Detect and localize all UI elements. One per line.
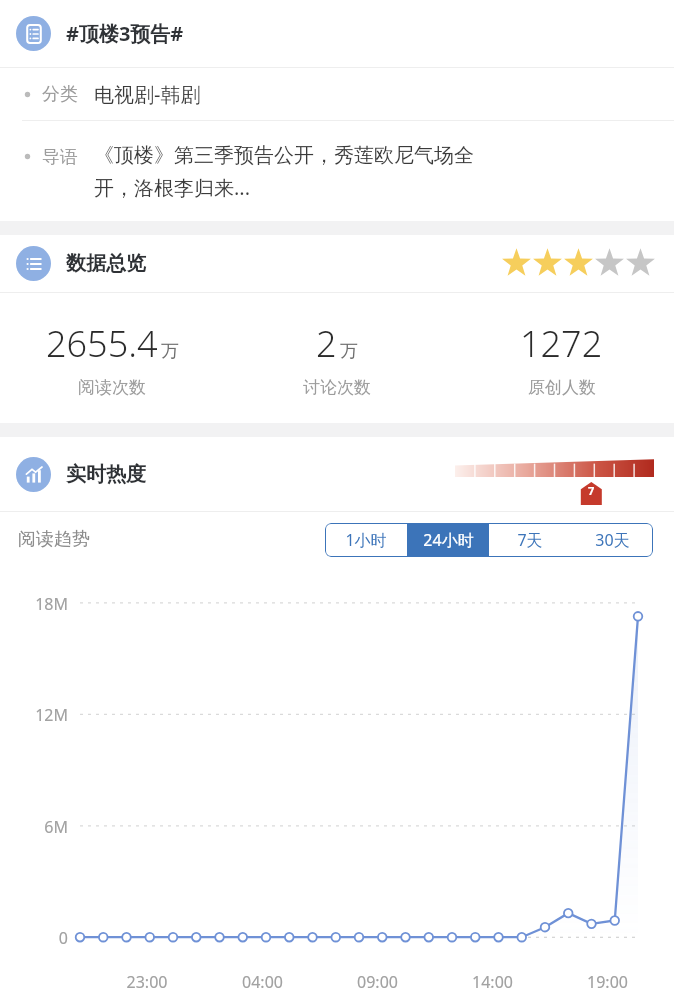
button[interactable]: 24小时 (407, 523, 489, 557)
button[interactable]: #顶楼3预告# (0, 0, 674, 67)
staticText: 09:00 (320, 971, 435, 993)
staticText: 24小时 (423, 529, 474, 551)
staticText: 2655.4 (46, 319, 158, 368)
staticText: 2 (316, 319, 337, 368)
staticText: 《顶楼》第三季预告公开，秀莲欧尼气场全 开，洛根李归来... (94, 143, 474, 201)
staticText: #顶楼3预告# (66, 20, 184, 47)
staticText: 1272 (520, 319, 603, 368)
button[interactable]: 1小时 (325, 523, 407, 557)
button[interactable]: 数据总览 (0, 235, 674, 292)
staticText: 7 (588, 483, 595, 498)
staticText: 30天 (595, 529, 630, 551)
staticText: 分类 (42, 83, 78, 106)
staticText: 万 (340, 340, 358, 363)
staticText: 12M (0, 704, 68, 726)
button[interactable]: 7天 (489, 523, 571, 557)
button[interactable]: 30天 (571, 523, 653, 557)
staticText: 电视剧-韩剧 (94, 81, 201, 108)
button[interactable]: 实时热度 (0, 437, 674, 511)
staticText: 讨论次数 (303, 377, 371, 398)
staticText: 0 (0, 927, 68, 949)
staticText: 实时热度 (66, 462, 146, 487)
staticText: 18M (0, 593, 68, 615)
staticText: 数据总览 (66, 251, 146, 276)
staticText: 14:00 (435, 971, 550, 993)
staticText: 7天 (517, 529, 543, 551)
other: 实时热度等级 7 (455, 437, 654, 511)
staticText: 导语 (42, 146, 78, 169)
staticText: 原创人数 (528, 377, 596, 398)
button[interactable]: 分类 (0, 68, 674, 120)
staticText: 1小时 (345, 529, 387, 551)
staticText: 6M (0, 816, 68, 838)
staticText: 万 (161, 340, 179, 363)
staticText: 23:00 (89, 971, 205, 993)
staticText: 阅读次数 (78, 377, 146, 398)
staticText: 阅读趋势 (18, 528, 90, 551)
staticText: 04:00 (205, 971, 320, 993)
staticText: 19:00 (550, 971, 665, 993)
button[interactable]: 导语 (0, 121, 674, 221)
